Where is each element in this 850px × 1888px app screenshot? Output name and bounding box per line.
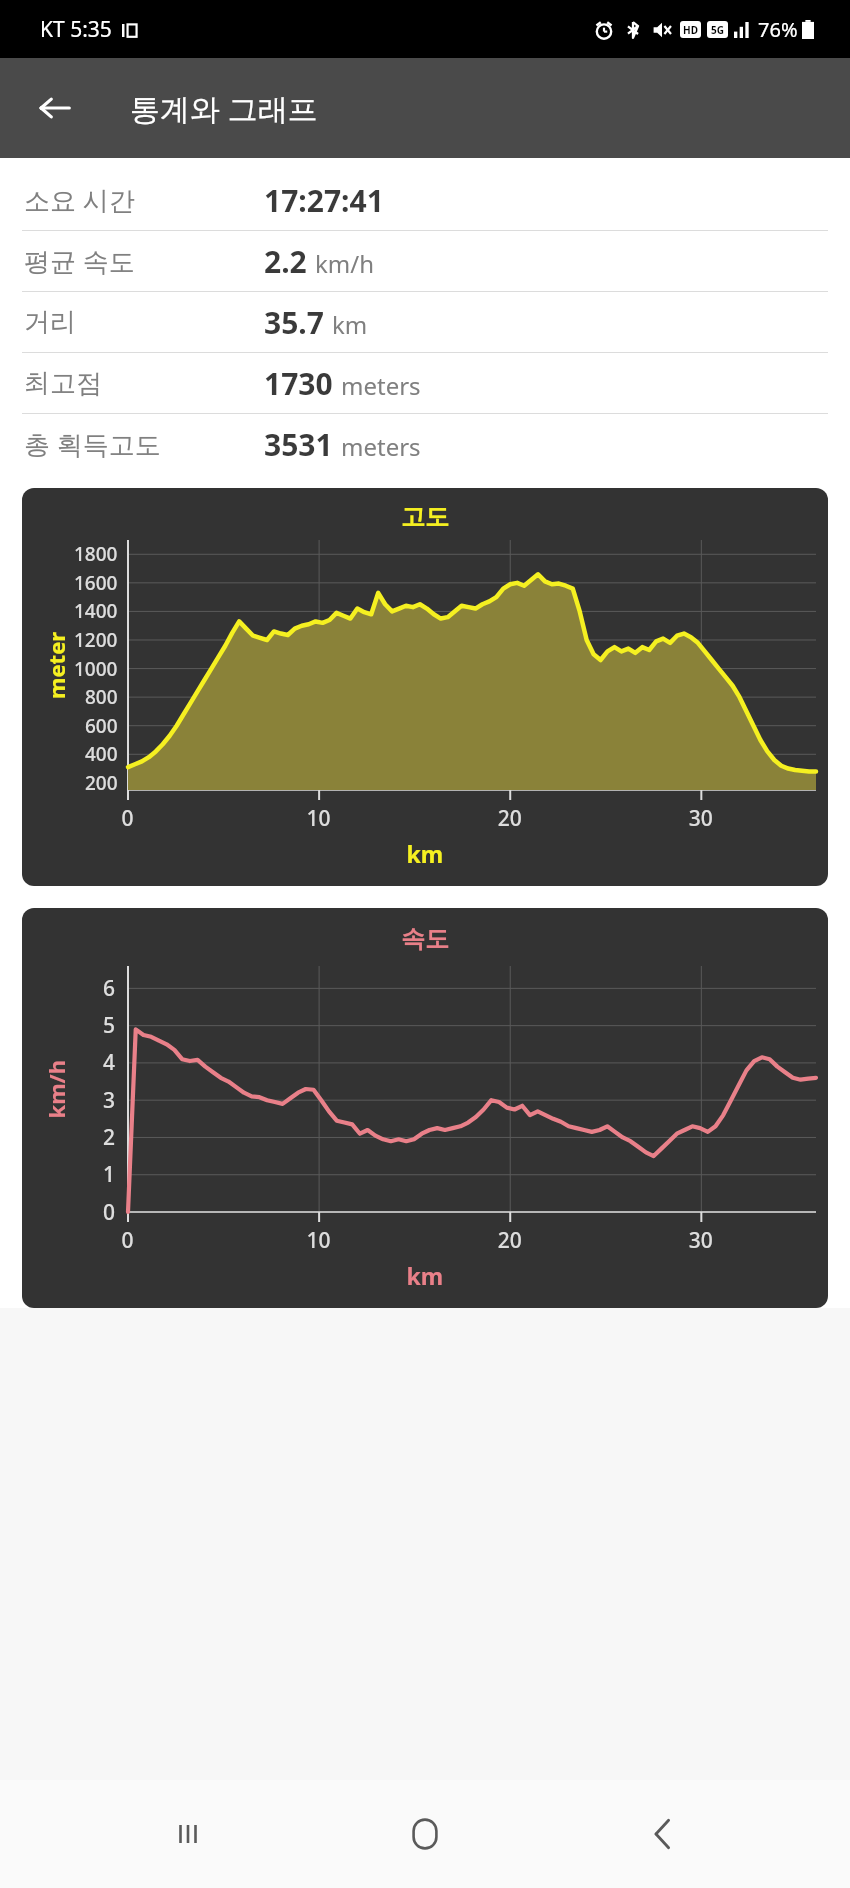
staticText: 총 획득고도 [24,426,264,462]
button[interactable]: Back [613,1784,713,1884]
staticText: 35.7 [264,302,324,343]
staticText: KT 5:35 [40,15,112,44]
staticText: 3531 [264,424,333,465]
staticText: meters [341,369,421,402]
staticText: 2.2 [264,241,307,282]
button[interactable]: 평균 속도 [0,231,850,291]
staticText: 최고점 [24,367,264,400]
staticText: 거리 [24,306,264,339]
button[interactable]: 최고점 [0,353,850,413]
button[interactable] [22,488,828,886]
button[interactable]: 거리 [0,292,850,352]
staticText: 통계와 그래프 [130,88,318,129]
button[interactable]: Back [26,80,82,136]
button[interactable]: Home [375,1784,475,1884]
staticText: 76% [758,16,798,43]
staticText: 5G [711,23,724,37]
staticText: 소요 시간 [24,182,264,218]
staticText: 17:27:41 [264,180,384,221]
staticText: 평균 속도 [24,243,264,279]
button[interactable] [22,908,828,1308]
button[interactable]: 총 획득고도 [0,414,850,474]
staticText: HD [683,23,698,37]
staticText: meters [341,430,421,463]
staticText: km [332,308,368,341]
staticText: km/h [315,247,375,280]
button[interactable]: Recent apps [138,1784,238,1884]
staticText: 1730 [264,363,333,404]
button[interactable]: 소요 시간 [0,170,850,230]
